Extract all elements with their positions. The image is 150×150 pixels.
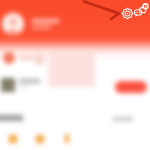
button[interactable]: Settings — [120, 6, 135, 21]
button[interactable]: Add — [56, 124, 84, 150]
button[interactable] — [3, 52, 15, 64]
button[interactable] — [48, 50, 95, 87]
button[interactable] — [115, 81, 147, 93]
button[interactable]: Messages — [132, 2, 149, 19]
button[interactable]: Profile — [2, 13, 24, 35]
button[interactable] — [34, 54, 45, 65]
button[interactable]: Search — [28, 124, 56, 150]
button[interactable] — [1, 78, 15, 92]
button[interactable]: Home — [0, 124, 28, 150]
